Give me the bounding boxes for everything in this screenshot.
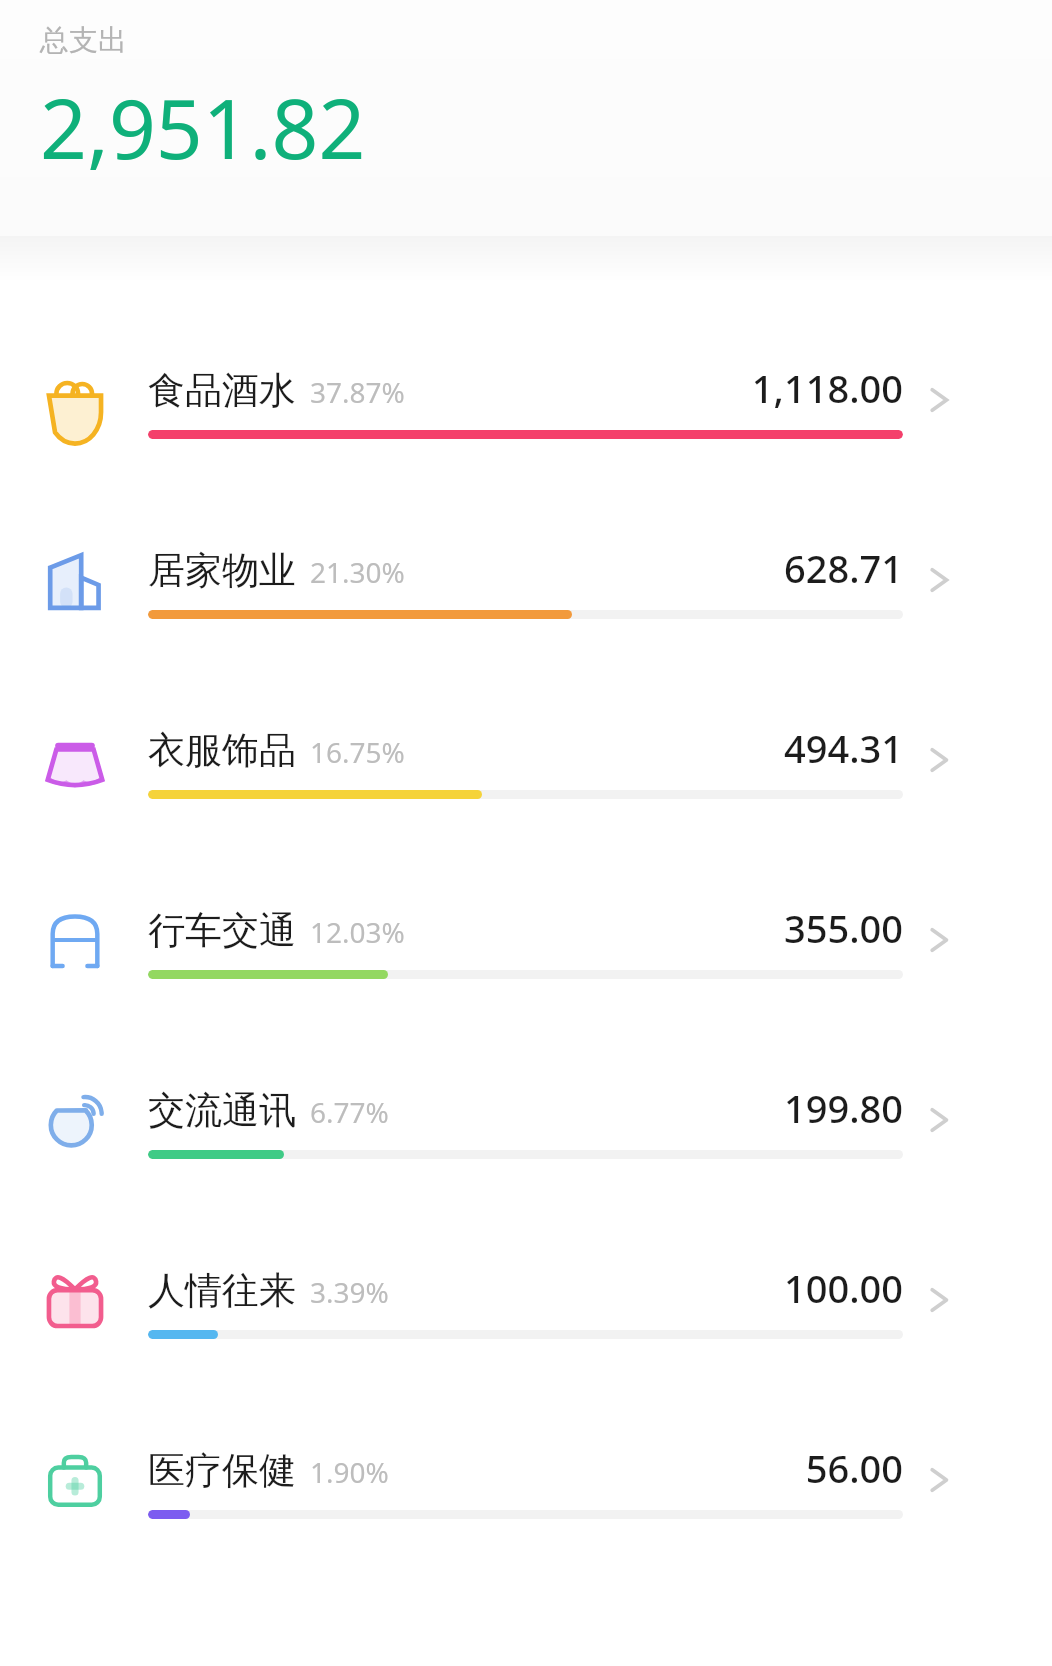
staticText: 行车交通: [148, 907, 296, 954]
staticText: 衣服饰品: [148, 727, 296, 774]
other: 查看人情往来明细: [922, 1283, 956, 1317]
staticText: 医疗保健: [148, 1447, 296, 1494]
other: 查看居家物业明细: [922, 563, 956, 597]
staticText: 100.00: [783, 1262, 903, 1314]
staticText: 人情往来: [148, 1267, 296, 1314]
button[interactable]: 衣服饰品: [0, 670, 1052, 850]
staticText: 628.71: [783, 542, 903, 594]
other: 查看食品酒水明细: [922, 383, 956, 417]
staticText: 6.77%: [310, 1093, 389, 1131]
button[interactable]: 交流通讯: [0, 1030, 1052, 1210]
staticText: 494.31: [783, 722, 903, 774]
staticText: 交流通讯: [148, 1087, 296, 1134]
staticText: 56.00: [805, 1442, 903, 1494]
staticText: 1.90%: [310, 1453, 389, 1491]
staticText: 2,951.82: [40, 71, 366, 183]
button[interactable]: 行车交通: [0, 850, 1052, 1030]
staticText: 21.30%: [310, 553, 405, 591]
staticText: 食品酒水: [148, 367, 296, 414]
staticText: 37.87%: [310, 373, 405, 411]
staticText: 1,118.00: [751, 362, 903, 414]
staticText: 16.75%: [310, 733, 405, 771]
button[interactable]: 人情往来: [0, 1210, 1052, 1390]
staticText: 199.80: [783, 1082, 903, 1134]
other: 查看医疗保健明细: [922, 1463, 956, 1497]
staticText: 355.00: [783, 902, 903, 954]
other: 查看行车交通明细: [922, 923, 956, 957]
button[interactable]: 食品酒水: [0, 310, 1052, 490]
staticText: 总支出: [40, 22, 127, 59]
staticText: 居家物业: [148, 547, 296, 594]
button[interactable]: 医疗保健: [0, 1390, 1052, 1570]
staticText: 12.03%: [310, 913, 405, 951]
staticText: 3.39%: [310, 1273, 389, 1311]
other: 查看衣服饰品明细: [922, 743, 956, 777]
other: 查看交流通讯明细: [922, 1103, 956, 1137]
button[interactable]: 居家物业: [0, 490, 1052, 670]
